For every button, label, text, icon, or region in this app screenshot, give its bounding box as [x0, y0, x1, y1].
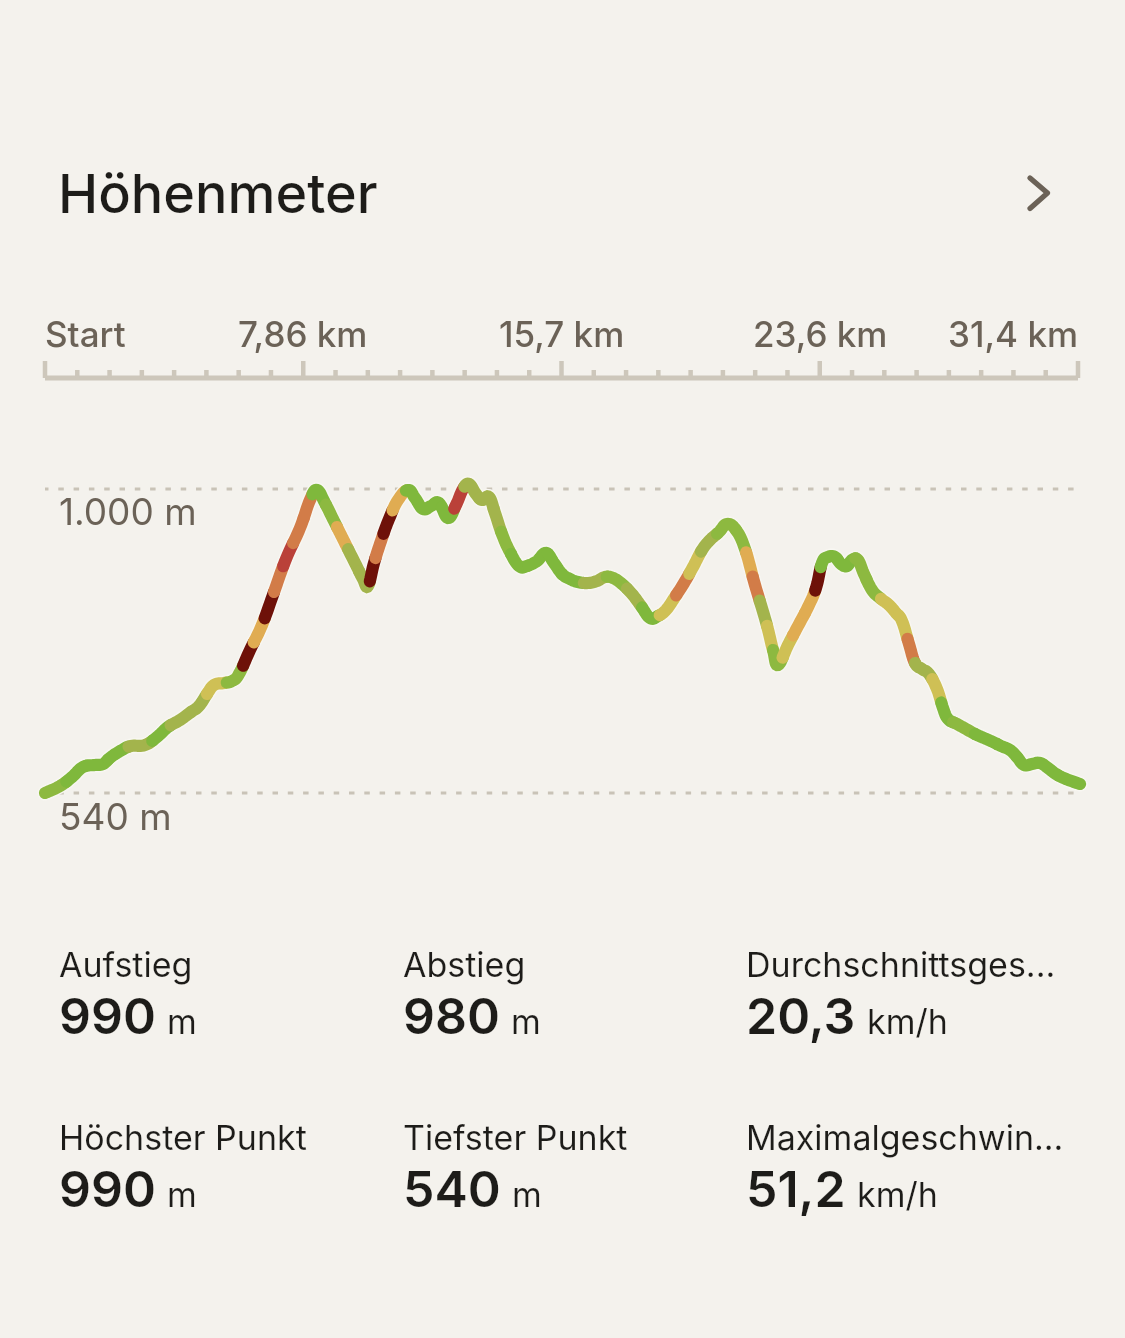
staticText: 540: [403, 1159, 501, 1219]
staticText: Höchster Punkt: [59, 1117, 307, 1158]
staticText: Start: [45, 313, 126, 355]
button[interactable]: Details anzeigen: [1013, 161, 1077, 225]
button[interactable]: Tiefster Punkt: [403, 1117, 628, 1219]
staticText: 31,4 km: [948, 313, 1079, 355]
staticText: m: [167, 1174, 197, 1215]
button[interactable]: Höchster Punkt: [59, 1117, 307, 1219]
staticText: km/h: [857, 1174, 938, 1215]
staticText: Aufstieg: [59, 944, 193, 985]
staticText: Tiefster Punkt: [403, 1117, 628, 1158]
staticText: Maximalgeschwin...: [746, 1117, 1064, 1158]
staticText: m: [167, 1001, 197, 1042]
button[interactable]: Abstieg: [403, 944, 541, 1046]
staticText: 7,86 km: [238, 313, 368, 355]
button[interactable]: Durchschnittsges...: [746, 944, 1056, 1046]
staticText: Höhenmeter: [58, 161, 378, 226]
staticText: 540 m: [59, 794, 172, 839]
staticText: 51,2: [746, 1159, 846, 1219]
button[interactable]: Aufstieg: [59, 944, 197, 1046]
staticText: 990: [59, 986, 156, 1046]
staticText: m: [512, 1174, 542, 1215]
button[interactable]: Höhenmeter: [0, 133, 1000, 253]
staticText: 1.000 m: [59, 489, 197, 534]
button[interactable]: Maximalgeschwin...: [746, 1117, 1064, 1219]
staticText: m: [511, 1001, 541, 1042]
staticText: 20,3: [746, 986, 856, 1046]
staticText: 990: [59, 1159, 156, 1219]
staticText: Durchschnittsges...: [746, 944, 1056, 985]
staticText: 15,7 km: [499, 313, 625, 355]
staticText: km/h: [867, 1001, 948, 1042]
staticText: Abstieg: [403, 944, 526, 985]
staticText: 23,6 km: [753, 313, 888, 355]
staticText: 980: [403, 986, 500, 1046]
